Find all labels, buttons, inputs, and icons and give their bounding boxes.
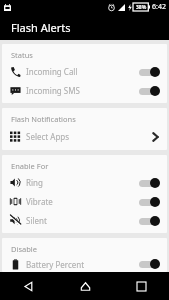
staticText: Select Apps — [26, 131, 70, 142]
staticText: Enable For — [11, 161, 49, 171]
other: Open — [152, 131, 159, 143]
button[interactable]: Home — [57, 272, 113, 300]
staticText: 38% — [136, 4, 147, 11]
staticText: Ring — [26, 177, 43, 188]
button[interactable]: Back — [0, 272, 57, 300]
button[interactable]: Battery Percent — [2, 256, 167, 272]
button[interactable]: Toggle — [138, 177, 160, 189]
button[interactable]: Incoming SMS — [2, 81, 167, 100]
staticText: Status — [11, 50, 33, 60]
staticText: Flash Notifications — [11, 114, 76, 124]
staticText: Incoming SMS — [26, 85, 80, 96]
button[interactable]: Toggle — [138, 215, 160, 227]
staticText: Silent — [26, 215, 47, 226]
staticText: Battery Percent — [26, 259, 85, 270]
button[interactable]: Toggle — [138, 196, 160, 208]
button[interactable]: Recents — [113, 272, 169, 300]
staticText: Incoming Call — [26, 66, 78, 77]
staticText: Vibrate — [26, 196, 53, 207]
button[interactable]: Toggle — [138, 258, 160, 270]
button[interactable]: Vibrate — [2, 192, 167, 211]
button[interactable]: Ring — [2, 173, 167, 192]
staticText: Disable — [11, 244, 37, 254]
button[interactable]: Select Apps — [2, 126, 167, 147]
staticText: Flash Alerts — [11, 20, 71, 35]
button[interactable]: Toggle — [138, 85, 160, 97]
staticText: 6:42 — [152, 2, 166, 12]
button[interactable]: Silent — [2, 211, 167, 230]
button[interactable]: Toggle — [138, 66, 160, 78]
button[interactable]: Incoming Call — [2, 62, 167, 81]
